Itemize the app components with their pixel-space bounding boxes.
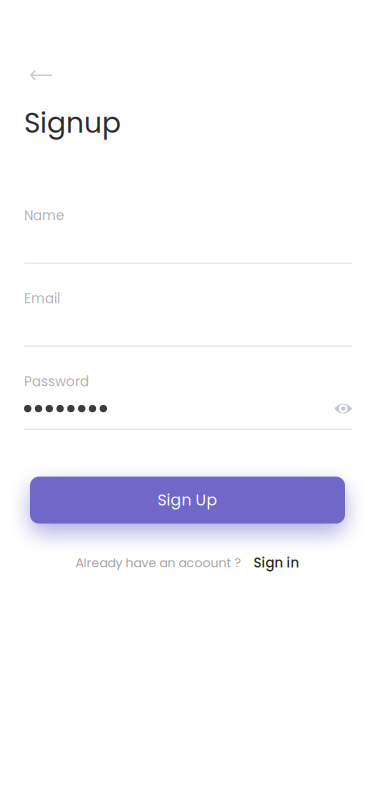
staticText: Already have an acoount ?: [75, 554, 240, 572]
staticText: Email: [24, 289, 60, 308]
staticText: Name: [24, 206, 64, 225]
staticText: Password: [24, 372, 89, 391]
staticText: Sign Up: [157, 489, 217, 511]
button[interactable]: Back: [0, 60, 65, 90]
staticText: Signup: [24, 103, 121, 143]
button[interactable]: Show password: [330, 398, 352, 419]
staticText: Sign in: [253, 554, 299, 572]
button[interactable]: Sign in: [253, 554, 299, 572]
button[interactable]: Sign Up: [30, 477, 345, 524]
